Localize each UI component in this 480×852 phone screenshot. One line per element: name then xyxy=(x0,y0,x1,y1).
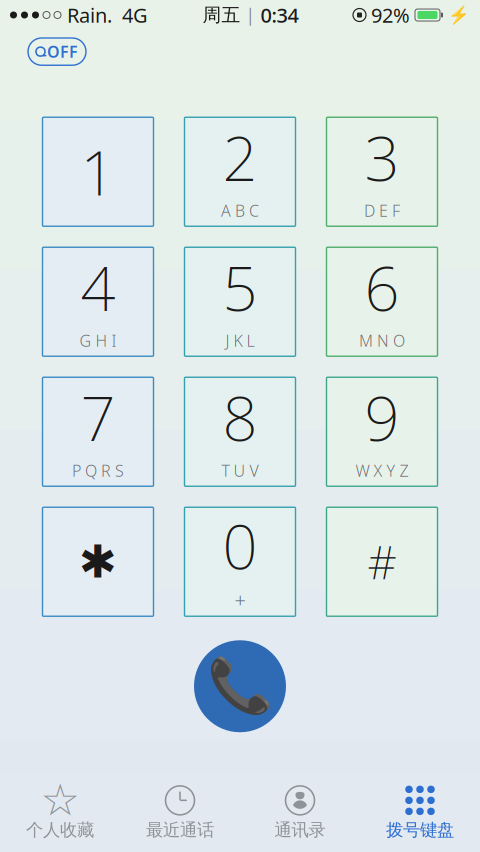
button[interactable]: Search off xyxy=(28,38,86,65)
button[interactable]: 0 xyxy=(184,507,295,616)
staticText: + xyxy=(234,586,245,613)
staticText: 📞 xyxy=(207,656,273,717)
staticText: M N O xyxy=(359,330,405,351)
staticText: | xyxy=(245,3,255,26)
staticText: D E F xyxy=(364,200,400,221)
staticText: 通讯录 xyxy=(274,819,325,841)
staticText: J K L xyxy=(225,330,254,351)
button[interactable]: 9 xyxy=(326,377,437,486)
staticText: 3 xyxy=(364,116,399,198)
staticText: ⚡ xyxy=(448,5,470,25)
staticText: A B C xyxy=(221,200,259,221)
staticText: 0:34 xyxy=(260,2,298,28)
button[interactable]: 最近通话 xyxy=(120,779,240,847)
staticText: 最近通话 xyxy=(146,819,214,841)
button[interactable]: 2 xyxy=(184,117,295,226)
staticText: 8 xyxy=(222,376,257,458)
staticText: 2 xyxy=(222,116,257,198)
staticText: 4G xyxy=(122,2,148,28)
button[interactable]: 4 xyxy=(42,247,153,356)
button[interactable]: Call xyxy=(194,640,286,732)
staticText: 7 xyxy=(80,376,115,458)
button[interactable]: 1 xyxy=(42,117,153,226)
button[interactable]: 5 xyxy=(184,247,295,356)
button[interactable]: ✱ xyxy=(42,507,153,616)
button[interactable]: ☆ xyxy=(0,779,120,847)
staticText: 6 xyxy=(364,246,399,328)
staticText: 92% xyxy=(371,2,410,28)
button[interactable]: 通讯录 xyxy=(240,779,360,847)
button[interactable]: 6 xyxy=(326,247,437,356)
button[interactable]: 3 xyxy=(326,117,437,226)
button[interactable]: 拨号键盘 xyxy=(360,779,480,847)
staticText: ✱ xyxy=(79,536,117,587)
staticText: 拨号键盘 xyxy=(386,819,454,841)
button[interactable]: # xyxy=(326,507,437,616)
staticText: 1 xyxy=(80,131,115,212)
staticText: 0 xyxy=(222,505,257,586)
staticText: T U V xyxy=(221,460,258,481)
staticText: 个人收藏 xyxy=(26,819,94,841)
staticText: 5 xyxy=(222,246,257,328)
staticText: P Q R S xyxy=(72,460,124,481)
button[interactable]: 7 xyxy=(42,377,153,486)
staticText: Rain. xyxy=(67,2,112,28)
staticText: 9 xyxy=(364,376,399,458)
button[interactable]: 8 xyxy=(184,377,295,486)
staticText: 4 xyxy=(80,246,115,328)
staticText: ☆ xyxy=(40,775,79,825)
staticText: OFF xyxy=(47,41,78,62)
staticText: W X Y Z xyxy=(355,460,408,481)
staticText: # xyxy=(367,532,396,592)
staticText: G H I xyxy=(79,330,116,351)
staticText: 周五 xyxy=(202,3,240,26)
